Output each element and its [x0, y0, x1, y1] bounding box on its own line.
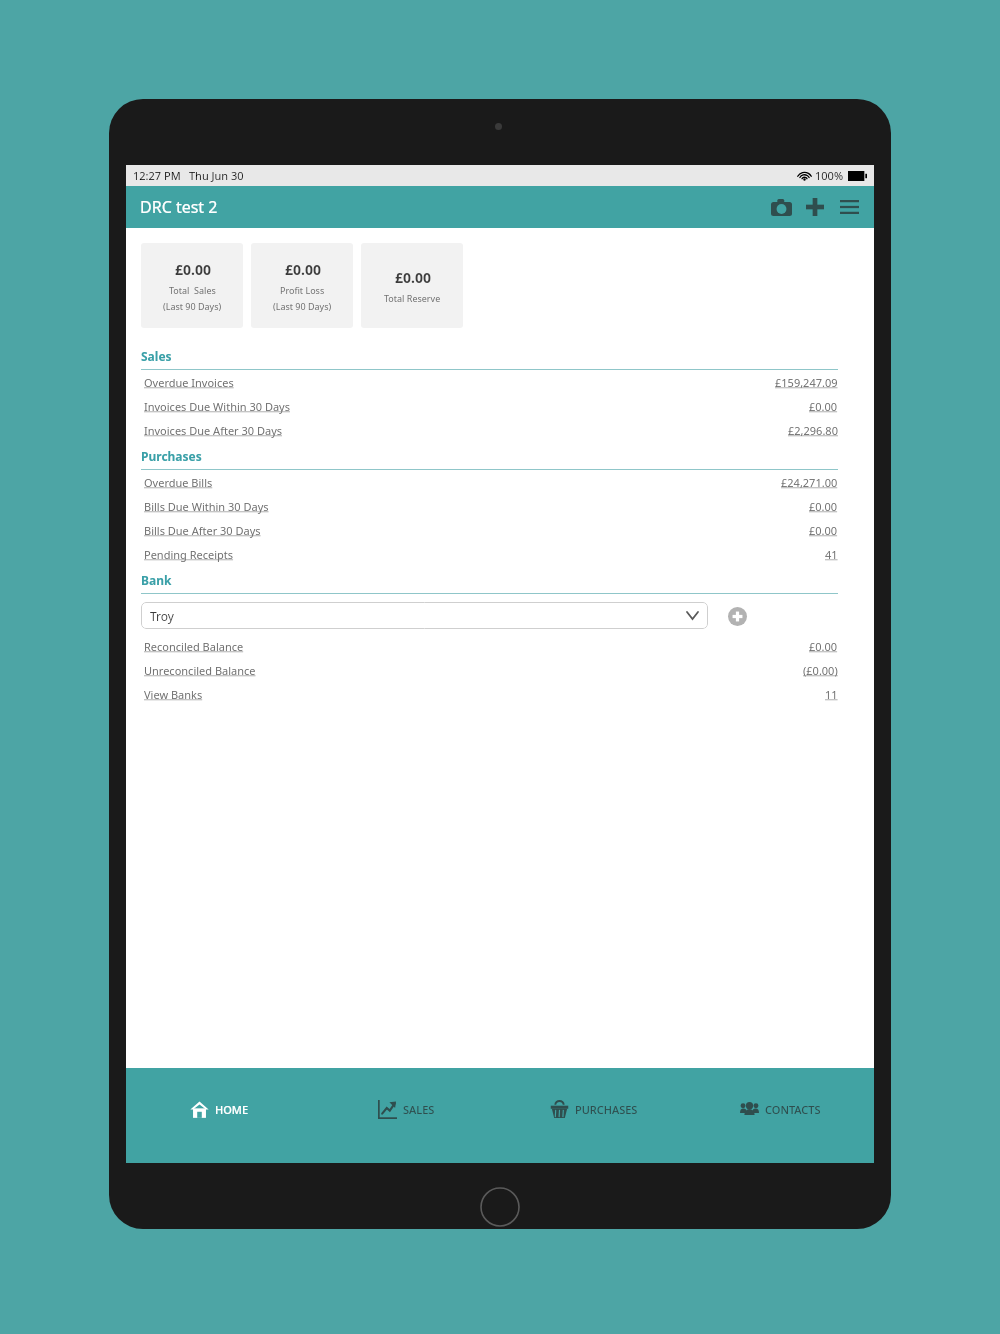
- staticText: CONTACTS: [765, 1102, 821, 1117]
- staticText: £24,271.00: [781, 475, 838, 490]
- staticText: Purchases: [141, 448, 202, 464]
- button[interactable]: Unreconciled Balance: [141, 658, 838, 682]
- button[interactable]: Add: [800, 192, 830, 222]
- button[interactable]: Bills Due Within 30 Days: [141, 494, 838, 518]
- button[interactable]: Invoices Due After 30 Days: [141, 418, 838, 442]
- staticText: £2,296.80: [788, 423, 838, 438]
- staticText: PURCHASES: [575, 1102, 638, 1117]
- staticText: 11: [825, 687, 838, 702]
- staticText: Total Reserve: [384, 292, 441, 304]
- button[interactable]: Pending Receipts: [141, 542, 838, 566]
- button[interactable]: £0.00: [361, 243, 463, 328]
- staticText: £0.00: [809, 639, 838, 654]
- staticText: £0.00: [175, 260, 211, 279]
- staticText: HOME: [215, 1102, 249, 1117]
- button[interactable]: Overdue Bills: [141, 470, 838, 494]
- button[interactable]: HOME: [126, 1068, 313, 1163]
- staticText: 100%: [815, 168, 844, 183]
- staticText: £0.00: [809, 399, 838, 414]
- staticText: Troy: [150, 608, 174, 624]
- staticText: 12:27 PM: [133, 168, 181, 183]
- staticText: £0.00: [285, 260, 321, 279]
- staticText: Bills Due Within 30 Days: [144, 499, 269, 514]
- staticText: Bills Due After 30 Days: [144, 523, 261, 538]
- button[interactable]: View Banks: [141, 682, 838, 706]
- staticText: £0.00: [809, 523, 838, 538]
- button[interactable]: £0.00: [141, 243, 243, 328]
- staticText: (Last 90 Days): [163, 300, 222, 312]
- staticText: Invoices Due After 30 Days: [144, 423, 283, 438]
- button[interactable]: £0.00: [251, 243, 353, 328]
- button[interactable]: Reconciled Balance: [141, 634, 838, 658]
- staticText: £0.00: [809, 499, 838, 514]
- staticText: 41: [825, 547, 838, 562]
- staticText: Sales: [141, 348, 172, 364]
- button[interactable]: Add bank account: [726, 605, 748, 627]
- button[interactable]: Camera: [766, 192, 796, 222]
- staticText: Total Sales: [169, 284, 216, 296]
- staticText: Overdue Bills: [144, 475, 213, 490]
- staticText: View Banks: [144, 687, 203, 702]
- button[interactable]: CONTACTS: [687, 1068, 874, 1163]
- staticText: £0.00: [395, 268, 431, 287]
- staticText: Reconciled Balance: [144, 639, 244, 654]
- button[interactable]: PURCHASES: [500, 1068, 687, 1163]
- staticText: Invoices Due Within 30 Days: [144, 399, 290, 414]
- button[interactable]: Invoices Due Within 30 Days: [141, 394, 838, 418]
- button[interactable]: Overdue Invoices: [141, 370, 838, 394]
- staticText: DRC test 2: [140, 196, 218, 218]
- staticText: Overdue Invoices: [144, 375, 234, 390]
- staticText: SALES: [403, 1102, 435, 1117]
- button[interactable]: Troy: [141, 602, 708, 629]
- staticText: £159,247.09: [775, 375, 838, 390]
- staticText: Unreconciled Balance: [144, 663, 256, 678]
- staticText: Bank: [141, 572, 172, 588]
- button[interactable]: SALES: [313, 1068, 500, 1163]
- staticText: Thu Jun 30: [189, 168, 244, 183]
- button[interactable]: Menu: [834, 192, 864, 222]
- staticText: (Last 90 Days): [273, 300, 332, 312]
- staticText: (£0.00): [803, 663, 838, 678]
- staticText: Profit Loss: [280, 284, 325, 296]
- button[interactable]: Bills Due After 30 Days: [141, 518, 838, 542]
- staticText: Pending Receipts: [144, 547, 234, 562]
